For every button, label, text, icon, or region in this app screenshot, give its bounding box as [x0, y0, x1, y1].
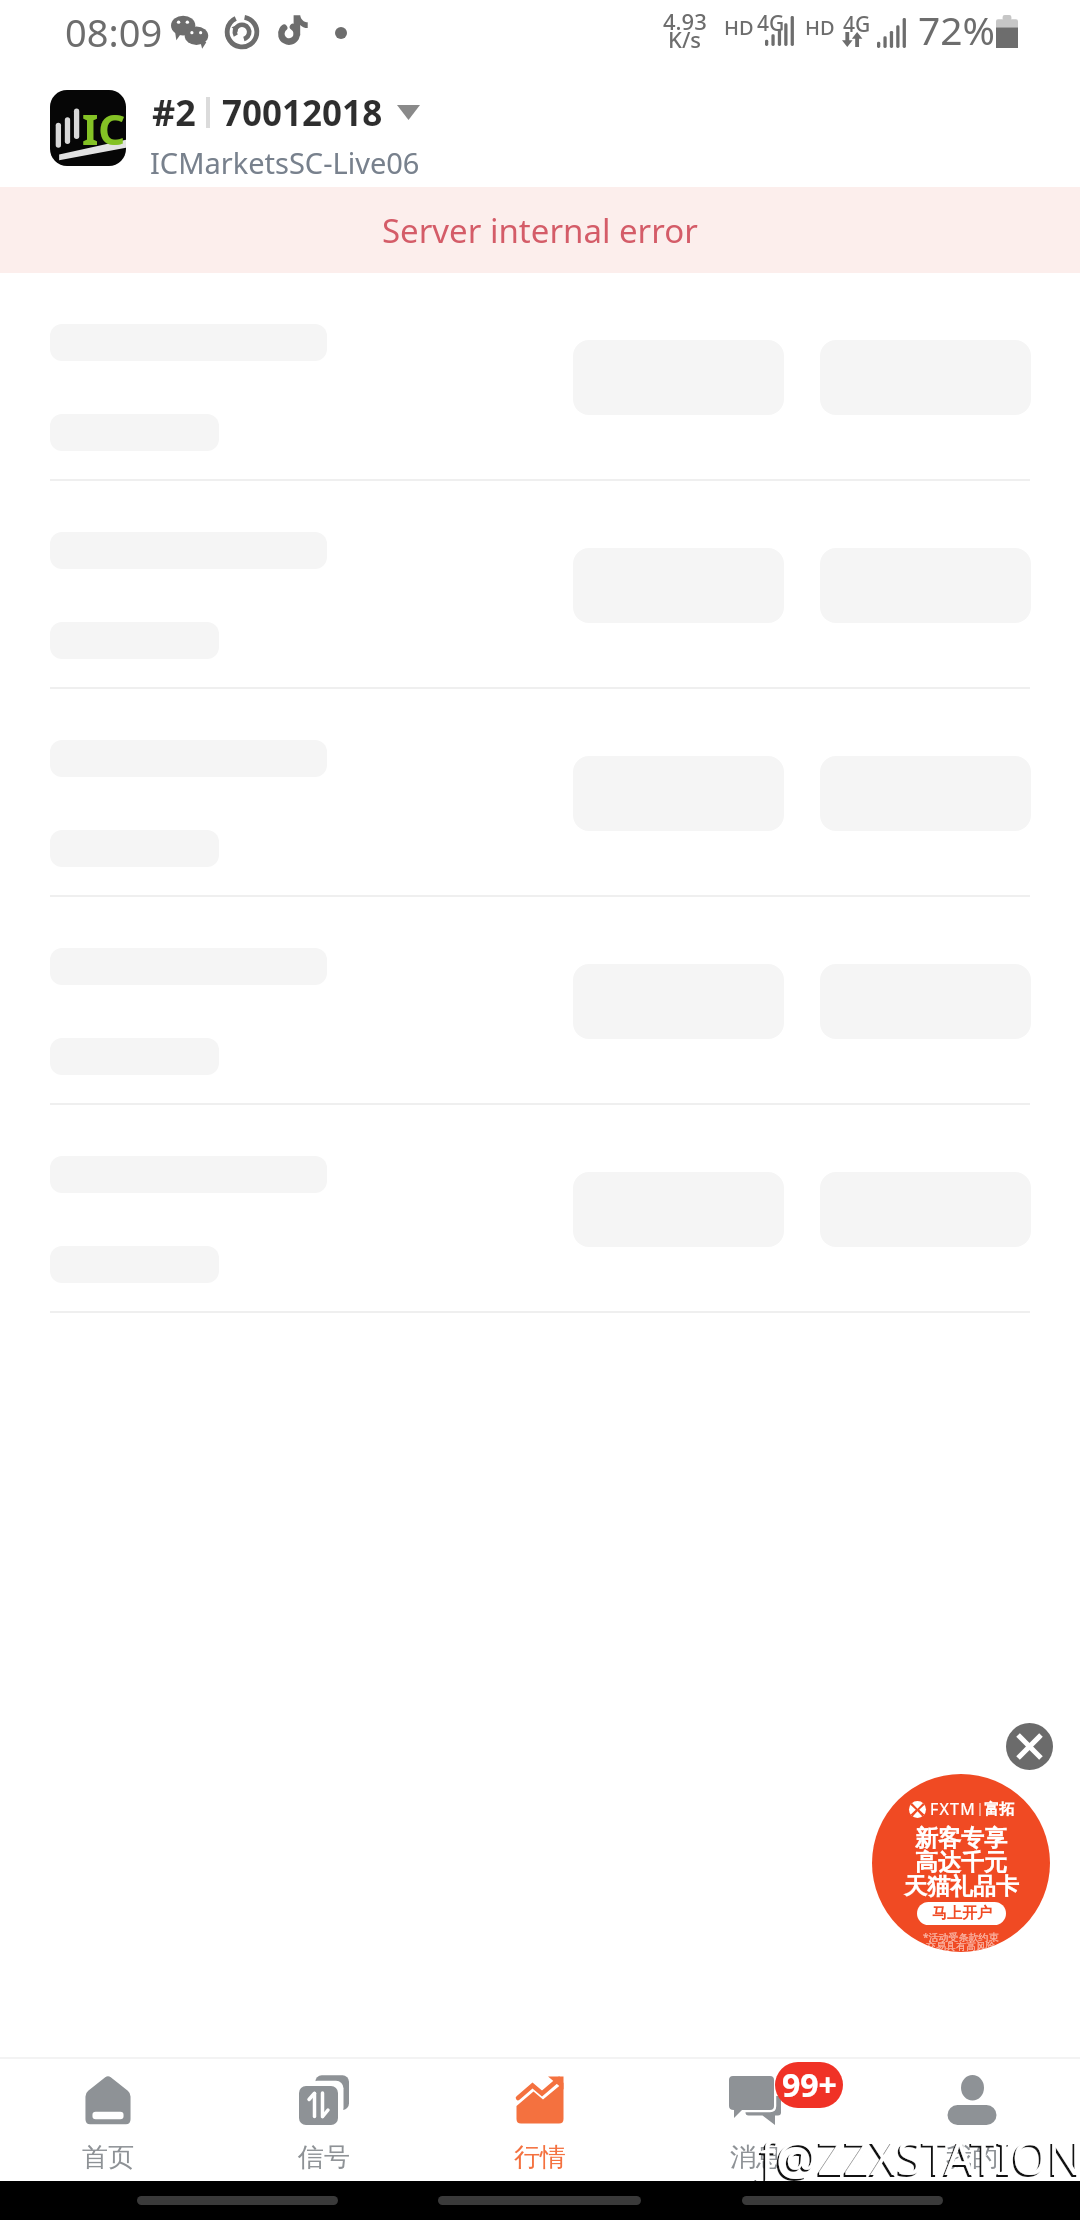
button[interactable]: 首页	[0, 2056, 216, 2181]
staticText: ƒ@ZZXSTATION	[755, 2128, 1080, 2191]
staticText: FXTM	[930, 1798, 976, 1820]
button[interactable]	[0, 481, 1080, 689]
staticText: 我的	[946, 2141, 998, 2174]
button[interactable]	[0, 689, 1080, 897]
staticText: ICMarketsSC-Live06	[150, 143, 420, 182]
staticText: #2	[152, 88, 196, 137]
staticText: 交易具有高风险	[926, 1940, 996, 1952]
staticText: 高达千元	[915, 1848, 1007, 1877]
button[interactable]: 信号	[216, 2056, 432, 2181]
staticText: 信号	[298, 2141, 350, 2174]
staticText: 首页	[82, 2141, 134, 2174]
button[interactable]: 行情	[432, 2056, 648, 2181]
button[interactable]: 马上开户	[917, 1902, 1006, 1925]
staticText: 新客专享	[915, 1824, 1007, 1853]
staticText: 70012018	[222, 89, 383, 137]
staticText: 马上开户	[932, 1904, 992, 1923]
button[interactable]	[0, 1105, 1080, 1313]
button[interactable]: #2	[152, 88, 420, 137]
button[interactable]: FXTM promotion	[872, 1774, 1050, 1952]
staticText: IC	[82, 100, 126, 157]
staticText: 富拓	[984, 1800, 1014, 1819]
staticText: Server internal error	[382, 208, 698, 253]
button[interactable]	[0, 273, 1080, 481]
staticText: 4G	[757, 9, 785, 38]
button[interactable]: Account avatar	[50, 90, 126, 166]
staticText: 消息	[730, 2141, 782, 2174]
staticText: 行情	[514, 2141, 566, 2174]
staticText: HD	[805, 14, 835, 41]
staticText: ƒ@ZZXSTATION	[757, 2126, 1080, 2189]
staticText: 08:09	[65, 6, 163, 58]
button[interactable]: 99+	[648, 2056, 864, 2181]
staticText: HD	[724, 14, 754, 41]
staticText: 天猫礼品卡	[904, 1872, 1019, 1901]
staticText: 72%	[918, 3, 996, 56]
staticText: K/s	[668, 24, 702, 54]
staticText: 4.93	[663, 6, 707, 36]
staticText: 4G	[843, 10, 871, 39]
button[interactable]: 我的	[864, 2056, 1080, 2181]
staticText: *活动受条款约束	[923, 1930, 999, 1944]
button[interactable]: Close ad	[1006, 1723, 1053, 1770]
button[interactable]	[0, 897, 1080, 1105]
staticText: 99+	[782, 2063, 837, 2107]
